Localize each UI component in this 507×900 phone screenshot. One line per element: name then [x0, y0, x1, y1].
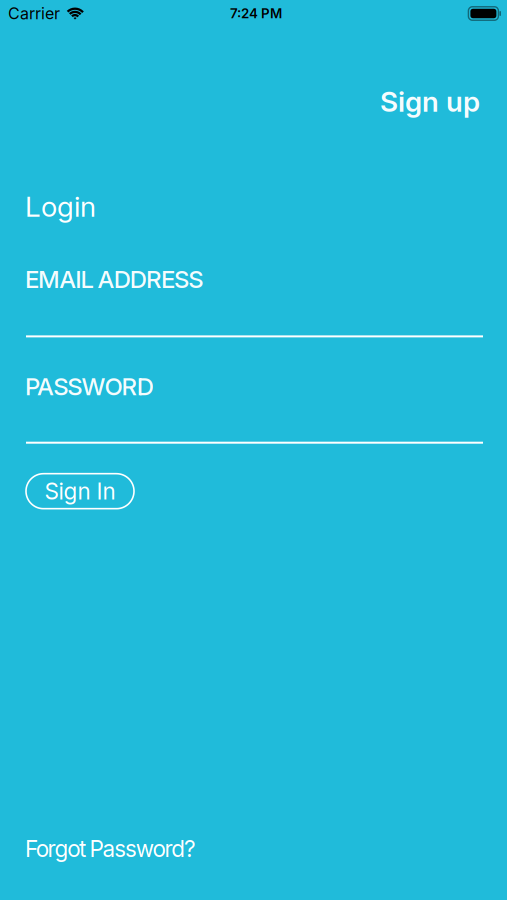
staticText: 7:24 PM	[230, 6, 282, 21]
button[interactable]: Forgot Password?	[25, 835, 196, 862]
staticText: EMAIL ADDRESS	[25, 265, 203, 293]
staticText: Forgot Password?	[25, 835, 196, 862]
button[interactable]: Sign In	[26, 474, 134, 509]
button[interactable]: Sign up	[380, 85, 480, 118]
staticText: Sign up	[380, 85, 480, 118]
staticText: Sign In	[44, 478, 115, 504]
staticText: Login	[25, 190, 96, 223]
staticText: PASSWORD	[25, 372, 154, 401]
staticText: Carrier	[8, 4, 60, 23]
